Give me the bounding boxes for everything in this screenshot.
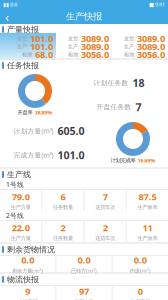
staticText: 2号线 xyxy=(6,211,24,220)
staticText: 6 xyxy=(60,190,65,203)
staticText: 0.0 xyxy=(77,254,90,266)
staticText: 16.69% xyxy=(137,157,155,164)
staticText: 生产: xyxy=(68,43,79,50)
staticText: 2 xyxy=(103,221,108,234)
staticText: 在途车辆 xyxy=(18,298,38,300)
staticText: 101.0 xyxy=(30,32,53,45)
staticText: 3056.0 xyxy=(137,48,165,61)
staticText: 生产方量 xyxy=(11,235,31,241)
staticText: 发货: xyxy=(17,35,28,42)
staticText: 3089.0 xyxy=(137,40,165,53)
staticText: 生产方量 xyxy=(11,204,31,210)
staticText: 作废(m³) xyxy=(130,267,151,274)
staticText: 3089.0 xyxy=(81,32,109,45)
staticText: 1号线 xyxy=(6,180,24,189)
staticText: 产量快报 xyxy=(7,25,39,34)
staticText: ▮▮ ıll ıll xyxy=(3,1,17,8)
staticText: 101.0 xyxy=(57,148,84,162)
staticText: 开盘率 xyxy=(17,109,32,116)
staticText: 计划完成率 xyxy=(110,157,135,164)
staticText: 发货: xyxy=(124,35,135,42)
staticText: 任务快报 xyxy=(7,61,39,70)
staticText: 发货: xyxy=(68,35,79,42)
staticText: 38.89% xyxy=(34,109,52,116)
staticText: 79.0 xyxy=(12,190,30,203)
staticText: 计划任务数 xyxy=(93,79,128,87)
staticText: 7 xyxy=(103,190,108,203)
staticText: 开盘任务数 xyxy=(96,103,131,111)
staticText: 生产快报 xyxy=(66,11,102,22)
staticText: 送货车次 xyxy=(95,204,115,210)
staticText: 97 xyxy=(79,285,89,297)
staticText: 3089.0 xyxy=(137,32,165,45)
staticText: 发车次数 xyxy=(74,298,94,300)
staticText: 任务数量 xyxy=(53,235,73,241)
staticText: 生产: xyxy=(17,43,28,50)
staticText: 检测: xyxy=(124,51,135,58)
staticText: 87.5 xyxy=(138,190,156,203)
staticText: 生产效率 xyxy=(137,235,157,241)
staticText: 剩余方量(m³) xyxy=(12,267,43,274)
staticText: 22.0 xyxy=(12,221,30,234)
staticText: 生产效率 xyxy=(137,204,157,210)
staticText: 0.0 xyxy=(134,254,147,266)
staticText: 68.0 xyxy=(35,48,53,61)
staticText: 送货车次 xyxy=(95,235,115,241)
staticText: 9 xyxy=(25,285,30,297)
staticText: 已转方(m³) xyxy=(71,267,97,274)
staticText: 101.0 xyxy=(30,40,53,53)
staticText: 11 xyxy=(142,221,152,234)
staticText: ‹ xyxy=(5,8,9,25)
staticText: 生产: xyxy=(124,43,135,50)
staticText: 7 xyxy=(135,100,141,114)
staticText: 物流快报 xyxy=(7,275,39,284)
staticText: 3056.0 xyxy=(81,48,109,61)
staticText: 任务数量 xyxy=(53,204,73,210)
staticText: 待派车辆 xyxy=(130,298,150,300)
staticText: 计划方量(m³) xyxy=(13,126,53,135)
staticText: 生产线 xyxy=(7,170,31,179)
staticText: 605.0 xyxy=(57,124,84,138)
staticText: 0 xyxy=(138,285,143,297)
staticText: 0.0 xyxy=(21,254,34,266)
staticText: ■ 9:41 xyxy=(149,1,165,8)
staticText: 检测: xyxy=(22,51,33,58)
staticText: 检测: xyxy=(68,51,79,58)
staticText: 18 xyxy=(132,76,144,90)
staticText: 剩余货物情况 xyxy=(7,245,55,254)
staticText: 3089.0 xyxy=(81,40,109,53)
button[interactable]: Back xyxy=(0,9,14,24)
staticText: 完成方量(m³) xyxy=(13,151,53,160)
staticText: 2 xyxy=(60,221,65,234)
